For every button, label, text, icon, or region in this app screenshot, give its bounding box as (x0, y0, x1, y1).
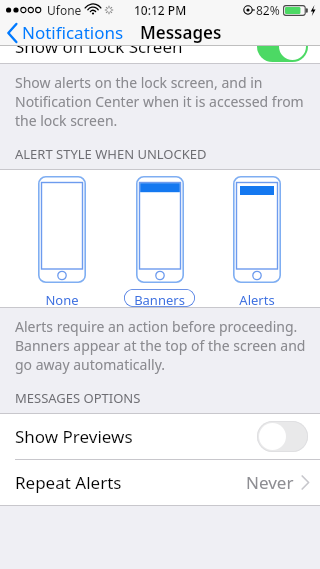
staticText: Never (246, 471, 294, 494)
staticText: 82% (256, 2, 280, 18)
button[interactable] (257, 31, 308, 62)
staticText: Banners (134, 291, 185, 305)
staticText: None (45, 291, 79, 305)
other: Show on Lock Screen toggle (257, 31, 308, 62)
button[interactable]: Notifications (7, 20, 124, 45)
staticText: Ufone (47, 2, 82, 18)
staticText: Notifications (22, 21, 124, 44)
staticText: Messages (140, 21, 222, 44)
button[interactable] (257, 421, 308, 452)
button[interactable]: Repeat Alerts (0, 460, 320, 505)
other: Show Previews toggle (257, 421, 308, 452)
staticText: Alerts require an action before proceedi… (15, 317, 306, 374)
staticText: Show Previews (15, 425, 133, 448)
staticText: Repeat Alerts (15, 471, 122, 494)
button[interactable]: Banners (124, 289, 195, 307)
button[interactable]: Show on Lock Screen (0, 30, 320, 63)
staticText: Show alerts on the lock screen, and in N… (15, 73, 304, 130)
button[interactable]: None (45, 291, 79, 305)
staticText: Alerts (239, 291, 275, 305)
button[interactable]: Show Previews (0, 414, 320, 459)
button[interactable]: Alerts (239, 291, 275, 305)
staticText: 10:12 PM (134, 2, 187, 18)
staticText: ALERT STYLE WHEN UNLOCKED (15, 145, 207, 163)
staticText: Show on Lock Screen (15, 35, 183, 58)
staticText: MESSAGES OPTIONS (15, 389, 141, 407)
